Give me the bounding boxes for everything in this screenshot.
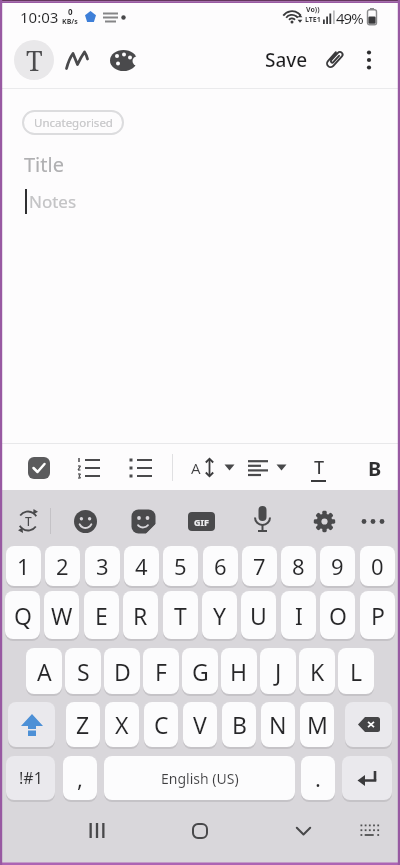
staticText: 7 bbox=[253, 551, 266, 581]
button[interactable]: L bbox=[338, 648, 374, 694]
button[interactable]: . bbox=[301, 756, 335, 800]
button[interactable] bbox=[361, 50, 377, 70]
button[interactable]: B bbox=[222, 702, 256, 747]
staticText: B bbox=[368, 455, 382, 482]
button[interactable] bbox=[248, 460, 270, 476]
button[interactable] bbox=[8, 702, 55, 747]
staticText: V bbox=[193, 709, 207, 740]
button[interactable]: H bbox=[221, 648, 257, 694]
button[interactable]: J bbox=[260, 648, 296, 694]
staticText: U bbox=[250, 600, 267, 631]
button[interactable]: U bbox=[241, 591, 276, 639]
button[interactable]: Uncategorised bbox=[22, 110, 124, 135]
button[interactable]: 1 bbox=[6, 546, 41, 586]
button[interactable] bbox=[129, 457, 152, 479]
staticText: S bbox=[77, 656, 90, 687]
button[interactable]: R bbox=[123, 591, 158, 639]
staticText: C bbox=[154, 709, 169, 740]
button[interactable]: 2 bbox=[45, 546, 80, 586]
button[interactable]: Q bbox=[5, 591, 40, 639]
button[interactable]: Y bbox=[202, 591, 237, 639]
staticText: Vo)) bbox=[306, 5, 320, 15]
button[interactable]: A bbox=[188, 453, 238, 483]
button[interactable] bbox=[66, 50, 90, 70]
staticText: X bbox=[115, 709, 129, 740]
staticText: 0 bbox=[371, 551, 384, 581]
staticText: 9 bbox=[331, 551, 344, 581]
button[interactable]: 4 bbox=[124, 546, 159, 586]
staticText: F bbox=[155, 656, 167, 687]
button[interactable]: T bbox=[14, 40, 54, 80]
button[interactable]: T bbox=[302, 450, 336, 486]
button[interactable] bbox=[28, 457, 50, 479]
button[interactable]: I bbox=[281, 591, 316, 639]
button[interactable]: 0 bbox=[360, 546, 395, 586]
staticText: 49% bbox=[336, 8, 363, 28]
staticText: 8 bbox=[292, 551, 305, 581]
button[interactable] bbox=[131, 509, 156, 534]
button[interactable] bbox=[192, 823, 208, 839]
staticText: B bbox=[232, 709, 247, 740]
button[interactable] bbox=[323, 48, 345, 72]
button[interactable] bbox=[361, 518, 385, 525]
button[interactable] bbox=[360, 824, 379, 838]
button[interactable]: C bbox=[144, 702, 178, 747]
button[interactable]: X bbox=[105, 702, 139, 747]
staticText: !#1 bbox=[19, 767, 43, 789]
staticText: T bbox=[26, 42, 43, 79]
button[interactable]: !#1 bbox=[6, 756, 55, 800]
button[interactable]: 6 bbox=[203, 546, 238, 586]
button[interactable]: B bbox=[358, 450, 392, 486]
button[interactable]: V bbox=[183, 702, 217, 747]
staticText: O bbox=[329, 600, 347, 631]
button[interactable] bbox=[110, 49, 139, 72]
staticText: W bbox=[51, 600, 73, 631]
button[interactable]: T bbox=[15, 508, 41, 534]
button[interactable]: P bbox=[360, 591, 395, 639]
staticText: Z bbox=[76, 709, 90, 740]
button[interactable]: Z bbox=[66, 702, 100, 747]
button[interactable] bbox=[296, 827, 311, 836]
button[interactable]: 8 bbox=[281, 546, 316, 586]
staticText: 1 bbox=[17, 551, 30, 581]
button[interactable]: Save bbox=[255, 44, 317, 76]
button[interactable]: GIF bbox=[188, 512, 215, 531]
button[interactable] bbox=[254, 506, 271, 535]
button[interactable]: D bbox=[104, 648, 140, 694]
staticText: D bbox=[114, 656, 131, 687]
staticText: 10:03 bbox=[20, 7, 59, 27]
button[interactable]: W bbox=[44, 591, 79, 639]
staticText: 0 bbox=[68, 6, 73, 17]
staticText: J bbox=[275, 656, 282, 687]
button[interactable]: A bbox=[26, 648, 62, 694]
staticText: I bbox=[295, 600, 303, 631]
button[interactable]: English (US) bbox=[104, 756, 295, 800]
button[interactable]: N bbox=[261, 702, 295, 747]
staticText: T bbox=[314, 455, 325, 480]
button[interactable] bbox=[313, 510, 336, 533]
button[interactable]: 7 bbox=[242, 546, 277, 586]
staticText: T bbox=[174, 600, 187, 631]
button[interactable]: 9 bbox=[320, 546, 355, 586]
button[interactable]: M bbox=[300, 702, 334, 747]
staticText: 3 bbox=[96, 551, 109, 581]
button[interactable]: G bbox=[182, 648, 218, 694]
button[interactable]: , bbox=[63, 756, 97, 800]
button[interactable] bbox=[342, 756, 392, 800]
button[interactable] bbox=[345, 702, 392, 747]
staticText: English (US) bbox=[161, 769, 239, 788]
button[interactable]: O bbox=[320, 591, 355, 639]
button[interactable]: F bbox=[143, 648, 179, 694]
button[interactable]: K bbox=[299, 648, 335, 694]
button[interactable]: 5 bbox=[163, 546, 198, 586]
button[interactable]: T bbox=[163, 591, 198, 639]
staticText: A bbox=[191, 458, 201, 478]
button[interactable] bbox=[77, 457, 100, 479]
button[interactable]: S bbox=[65, 648, 101, 694]
button[interactable]: E bbox=[84, 591, 119, 639]
button[interactable] bbox=[74, 510, 97, 533]
staticText: 6 bbox=[214, 551, 227, 581]
button[interactable] bbox=[89, 823, 105, 838]
button[interactable]: 3 bbox=[85, 546, 120, 586]
staticText: Uncategorised bbox=[34, 115, 113, 131]
